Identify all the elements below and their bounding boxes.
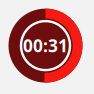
button[interactable]: Timer, 31 seconds remaining (8, 9, 82, 83)
staticText: 00:31 (23, 34, 68, 57)
